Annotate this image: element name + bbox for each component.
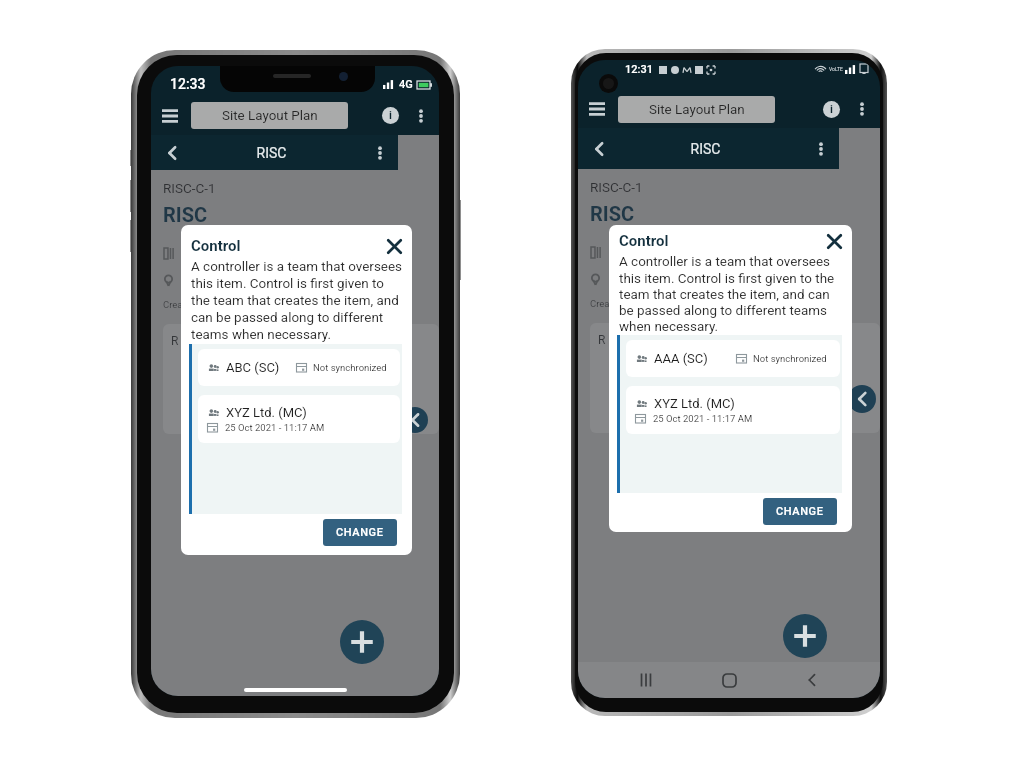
button[interactable]: Back <box>797 665 827 695</box>
staticText: CHANGE <box>336 526 384 539</box>
button[interactable]: CHANGE <box>763 498 837 525</box>
staticText: RISC <box>179 145 364 161</box>
staticText: R <box>598 333 606 347</box>
button[interactable]: XYZ Ltd. (MC) <box>198 395 400 443</box>
staticText: VoLTE <box>829 66 843 72</box>
staticText: A controller is a team that oversees thi… <box>191 259 404 343</box>
button[interactable]: XYZ Ltd. (MC) <box>626 386 840 434</box>
staticText: 12:31 <box>625 63 653 76</box>
staticText: i <box>389 109 392 122</box>
staticText: CHANGE <box>776 505 824 518</box>
staticText: 25 Oct 2021 - 11:17 AM <box>653 413 753 424</box>
staticText: 4G <box>399 78 413 91</box>
staticText: Creat <box>590 298 613 309</box>
button[interactable]: Navigation menu <box>583 95 611 123</box>
button[interactable]: Close <box>384 236 404 256</box>
staticText: 12:33 <box>170 76 206 92</box>
button[interactable]: Information <box>823 101 840 118</box>
staticText: RISC <box>163 203 208 226</box>
button[interactable]: Navigation menu <box>156 102 184 130</box>
staticText: AAA (SC) <box>654 351 708 366</box>
staticText: A controller is a team that oversees thi… <box>619 254 844 334</box>
button[interactable]: Back <box>161 141 185 165</box>
button[interactable]: Home <box>714 665 744 695</box>
staticText: RISC-C-1 <box>163 180 216 196</box>
staticText: 25 Oct 2021 - 11:17 AM <box>225 422 325 433</box>
button[interactable]: Recent apps <box>631 665 661 695</box>
staticText: Creat <box>163 299 186 310</box>
staticText: i <box>830 103 833 116</box>
staticText: ABC (SC) <box>226 360 280 375</box>
button[interactable]: ABC (SC) <box>198 349 400 386</box>
button[interactable]: Collapse panel <box>848 385 876 413</box>
staticText: XYZ Ltd. (MC) <box>226 405 307 420</box>
staticText: Site Layout Plan <box>222 108 318 124</box>
button[interactable]: Collapse panel <box>402 407 428 433</box>
staticText: RISC <box>590 202 635 225</box>
button[interactable]: Add <box>783 614 827 658</box>
button[interactable]: More options <box>853 100 871 118</box>
staticText: Control <box>619 232 824 250</box>
staticText: RISC <box>606 141 805 157</box>
staticText: R <box>171 334 179 348</box>
button[interactable]: Site Layout Plan <box>618 96 775 123</box>
button[interactable]: More options <box>412 107 430 125</box>
staticText: RISC-C-1 <box>590 179 643 195</box>
staticText: Not synchronized <box>753 353 827 364</box>
staticText: Site Layout Plan <box>649 102 745 118</box>
button[interactable]: Add <box>340 620 384 664</box>
button[interactable]: More options <box>811 139 831 159</box>
button[interactable]: Site Layout Plan <box>191 102 348 129</box>
button[interactable]: Information <box>382 107 399 124</box>
button[interactable]: Back <box>588 137 612 161</box>
button[interactable]: Close <box>824 231 844 251</box>
button[interactable]: CHANGE <box>323 519 397 546</box>
button[interactable]: AAA (SC) <box>626 340 840 377</box>
staticText: Control <box>191 237 384 255</box>
staticText: XYZ Ltd. (MC) <box>654 396 735 411</box>
button[interactable]: More options <box>370 143 390 163</box>
staticText: Not synchronized <box>313 362 387 373</box>
